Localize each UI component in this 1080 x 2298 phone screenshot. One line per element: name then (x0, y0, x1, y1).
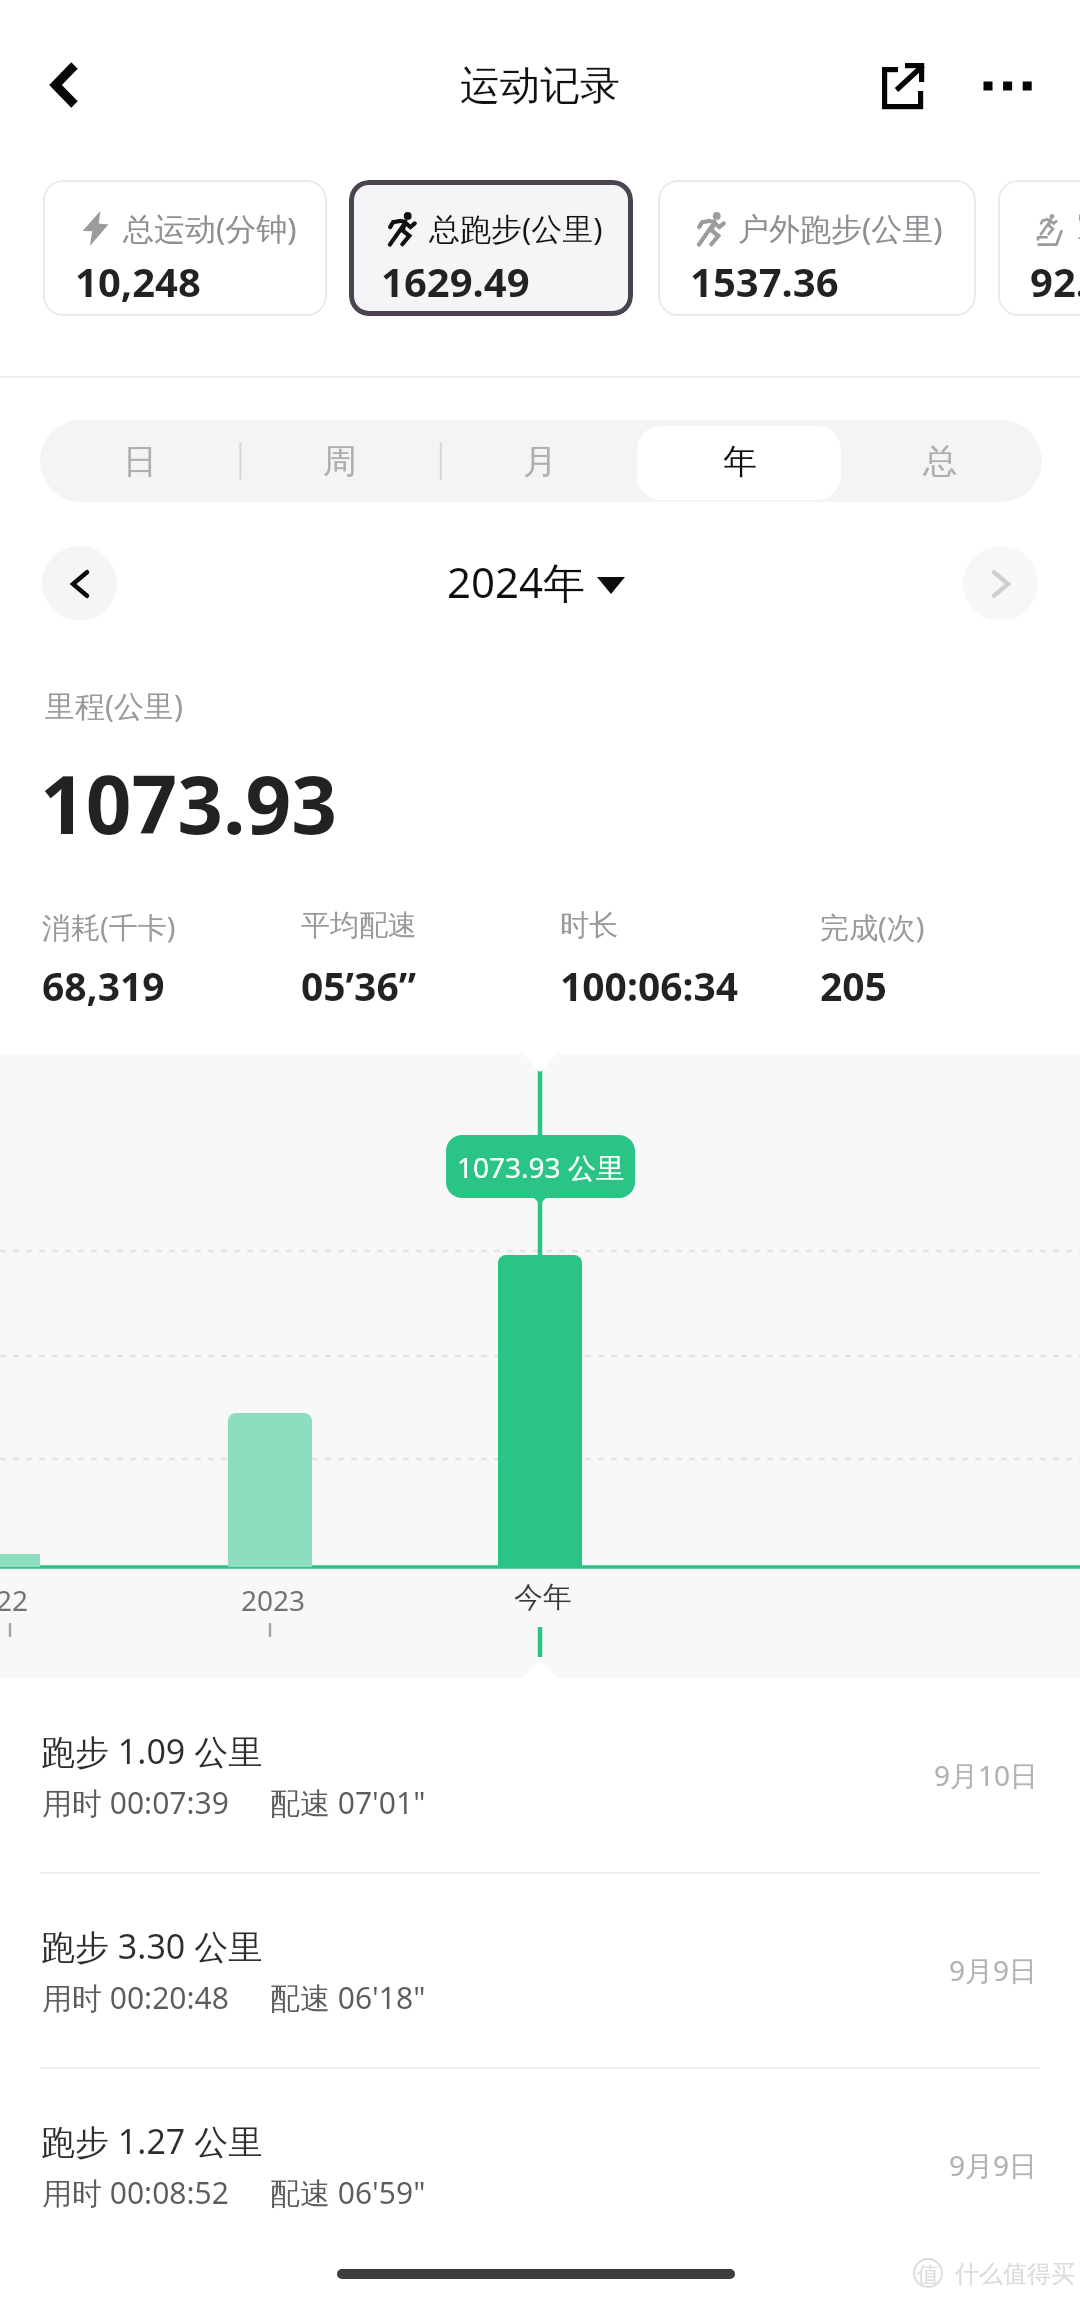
staticText: 户外跑步(公里) (738, 207, 943, 249)
staticText: 年 (723, 440, 757, 483)
staticText: 1537.36 (690, 254, 839, 308)
staticText: 100:06:34 (560, 959, 739, 1012)
button[interactable]: 跑步 1.09 公里 (0, 1718, 1080, 1913)
staticText: 平均配速 (301, 907, 417, 944)
staticText: 总 (923, 440, 957, 483)
staticText: 月 (523, 440, 557, 483)
staticText: 2024年 (447, 553, 586, 610)
button[interactable]: 月 (440, 420, 640, 502)
staticText: 时长 (560, 907, 618, 944)
staticText: 今年 (514, 1579, 572, 1616)
staticText: 跑步 1.09 公里 (41, 1728, 263, 1774)
staticText: 配速 06'59" (270, 2172, 426, 2213)
staticText: 1073.93 公里 (457, 1148, 624, 1186)
button[interactable]: 跑步 3.30 公里 (0, 1913, 1080, 2108)
staticText: 什么值得买 (955, 2259, 1075, 2289)
button[interactable]: More options (947, 41, 1037, 131)
staticText: 1629.49 (381, 254, 530, 308)
staticText: 9月10日 (934, 1756, 1039, 1794)
staticText: 周 (323, 440, 357, 483)
button[interactable]: 2024年 (447, 553, 625, 610)
button[interactable]: Share (860, 40, 950, 130)
staticText: 9月9日 (949, 1951, 1038, 1989)
button[interactable]: 年 (640, 420, 840, 502)
staticText: 跑步 1.27 公里 (41, 2118, 263, 2164)
button[interactable]: 户外跑步(公里) (658, 180, 976, 316)
staticText: 用时 00:20:48 (42, 1977, 229, 2018)
staticText: 里程(公里) (45, 685, 183, 726)
staticText: 92.13 (1030, 254, 1080, 308)
staticText: 跑步 3.30 公里 (41, 1923, 263, 1969)
staticText: 68,319 (42, 959, 165, 1012)
staticText: 运动记录 (460, 60, 620, 110)
staticText: 用时 00:08:52 (42, 2172, 229, 2213)
staticText: 总跑步(公里) (429, 207, 603, 249)
staticText: 10,248 (75, 254, 201, 308)
button[interactable]: 室内跑步(公里) (998, 180, 1080, 316)
staticText: 9月9日 (949, 2146, 1038, 2184)
staticText: 2023 (241, 1581, 306, 1619)
staticText: 总运动(分钟) (123, 207, 297, 249)
button[interactable]: Back (20, 40, 110, 130)
staticText: 配速 07'01" (270, 1782, 426, 1823)
button[interactable]: 总跑步(公里) (349, 180, 633, 316)
staticText: 1073.93 (40, 748, 338, 857)
button[interactable]: 周 (240, 420, 440, 502)
staticText: 值 (917, 2261, 939, 2289)
staticText: 消耗(千卡) (42, 907, 176, 947)
staticText: 2022 (0, 1581, 29, 1619)
button[interactable]: 总运动(分钟) (43, 180, 327, 316)
button[interactable]: 日 (40, 420, 240, 502)
staticText: 用时 00:07:39 (42, 1782, 229, 1823)
staticText: 完成(次) (820, 907, 925, 947)
staticText: 配速 06'18" (270, 1977, 426, 2018)
button[interactable]: 总 (840, 420, 1040, 502)
button[interactable]: Previous year (42, 546, 117, 621)
staticText: 日 (123, 440, 157, 483)
button[interactable]: Next year (963, 546, 1038, 621)
staticText: 205 (820, 959, 887, 1012)
staticText: 室内跑步(公里) (1078, 207, 1080, 246)
button[interactable]: 跑步 1.27 公里 (0, 2108, 1080, 2298)
staticText: 05’36” (301, 959, 417, 1012)
